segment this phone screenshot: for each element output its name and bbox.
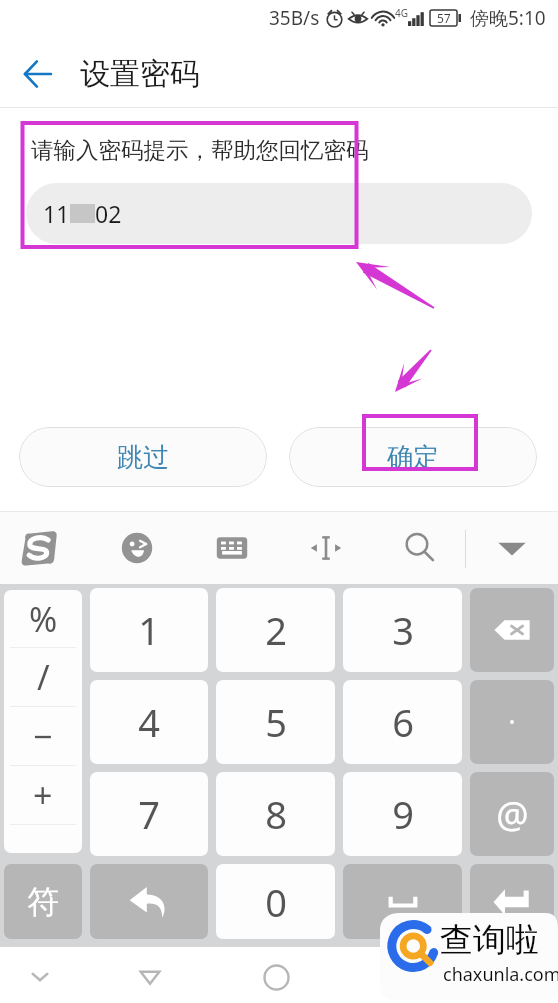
staticText: 02 <box>95 198 122 229</box>
button[interactable]: + <box>4 766 82 824</box>
button[interactable]: 6 <box>343 680 462 764</box>
button[interactable]: 3 <box>343 588 462 672</box>
button[interactable]: 4 <box>90 680 208 764</box>
staticText: 查询啦 <box>440 919 539 961</box>
staticText: 符 <box>27 882 59 922</box>
button[interactable]: 8 <box>216 772 335 856</box>
staticText: @ <box>496 790 529 839</box>
button[interactable]: Undo <box>90 864 208 939</box>
staticText: % <box>29 596 58 642</box>
button[interactable]: Hide keyboard <box>476 512 548 584</box>
button[interactable]: Search <box>384 512 456 584</box>
staticText: 3 <box>392 604 414 656</box>
staticText: − <box>33 713 53 759</box>
button[interactable]: Hide keyboard <box>13 950 67 1003</box>
staticText: 11 <box>43 198 70 229</box>
button[interactable]: Move cursor <box>290 512 362 584</box>
button[interactable]: / <box>4 648 82 706</box>
staticText: 傍晚5:10 <box>470 5 546 31</box>
button[interactable]: 2 <box>216 588 335 672</box>
button[interactable]: @ <box>470 772 554 856</box>
button[interactable]: 5 <box>216 680 335 764</box>
staticText: 1 <box>138 604 160 656</box>
button[interactable]: % <box>4 590 82 647</box>
button[interactable]: Keyboard layout <box>196 512 268 584</box>
button[interactable]: − <box>4 707 82 765</box>
button[interactable]: Back <box>7 43 69 105</box>
staticText: 7 <box>138 788 160 840</box>
button[interactable]: Back <box>123 950 177 1003</box>
button[interactable]: 1 <box>90 588 208 672</box>
staticText: 9 <box>392 788 414 840</box>
staticText: 请输入密码提示，帮助您回忆密码 <box>31 136 369 164</box>
button[interactable]: Enter <box>470 864 554 939</box>
staticText: 跳过 <box>117 441 169 474</box>
button[interactable] <box>4 825 82 853</box>
staticText: 6 <box>392 696 414 748</box>
button[interactable]: Space <box>343 864 462 939</box>
button[interactable]: Emoji <box>101 512 173 584</box>
button[interactable]: 9 <box>343 772 462 856</box>
button[interactable]: 确定 <box>289 427 537 487</box>
staticText: + <box>33 772 53 818</box>
staticText: 57 <box>437 10 451 26</box>
staticText: 0 <box>265 876 287 928</box>
staticText: 4 <box>138 696 160 748</box>
button[interactable]: 跳过 <box>19 427 267 487</box>
staticText: 确定 <box>387 441 439 474</box>
button[interactable]: Sogou input method <box>3 512 75 584</box>
button[interactable]: Backspace <box>470 588 554 672</box>
button[interactable]: 7 <box>90 772 208 856</box>
staticText: 5 <box>265 696 287 748</box>
staticText: 2 <box>265 604 287 656</box>
staticText: chaxunla.com <box>443 962 558 987</box>
button[interactable]: 符 <box>4 864 82 939</box>
staticText: 4G <box>395 6 408 20</box>
button[interactable]: 0 <box>216 864 335 939</box>
staticText: 设置密码 <box>80 55 200 93</box>
staticText: 35B/s <box>269 5 320 31</box>
button[interactable]: Home <box>249 950 303 1003</box>
staticText: 8 <box>265 788 287 840</box>
button[interactable]: Period <box>470 680 554 764</box>
button[interactable]: 11 <box>26 183 532 244</box>
staticText: / <box>37 654 50 700</box>
